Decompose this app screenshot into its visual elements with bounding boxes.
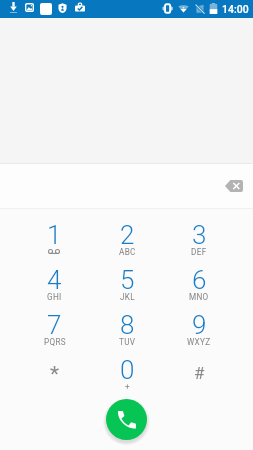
button[interactable]: * [18, 354, 91, 399]
button[interactable]: 5 [91, 264, 163, 309]
staticText: 0 [120, 355, 135, 385]
staticText: MNO [189, 292, 209, 302]
button[interactable]: Backspace [219, 171, 249, 201]
staticText: + [125, 382, 130, 392]
staticText: PQRS [44, 337, 66, 347]
staticText: WXYZ [187, 337, 211, 347]
staticText: * [50, 362, 60, 387]
staticText: 14:00 [222, 3, 249, 15]
staticText: 8 [120, 310, 135, 340]
button[interactable]: 1 [18, 219, 91, 264]
button[interactable]: 8 [91, 309, 163, 354]
button[interactable]: 4 [18, 264, 91, 309]
staticText: GHI [47, 292, 62, 302]
staticText: 1 [47, 220, 62, 250]
button[interactable]: 9 [163, 309, 235, 354]
staticText: TUV [119, 337, 136, 347]
staticText: JKL [120, 292, 135, 302]
staticText: 7 [47, 310, 62, 340]
staticText: 6 [192, 265, 207, 295]
button[interactable]: # [163, 354, 235, 399]
staticText: 2 [120, 220, 135, 250]
button[interactable]: 2 [91, 219, 163, 264]
button[interactable]: Call [106, 399, 147, 440]
staticText: 3 [192, 220, 207, 250]
staticText: 5 [120, 265, 135, 295]
staticText: # [194, 363, 205, 383]
button[interactable]: 3 [163, 219, 235, 264]
staticText: 4 [47, 265, 62, 295]
button[interactable]: 7 [18, 309, 91, 354]
staticText: DEF [191, 247, 207, 257]
staticText: 9 [192, 310, 207, 340]
staticText: ABC [119, 247, 136, 257]
button[interactable]: 0 [91, 354, 163, 399]
button[interactable]: 6 [163, 264, 235, 309]
